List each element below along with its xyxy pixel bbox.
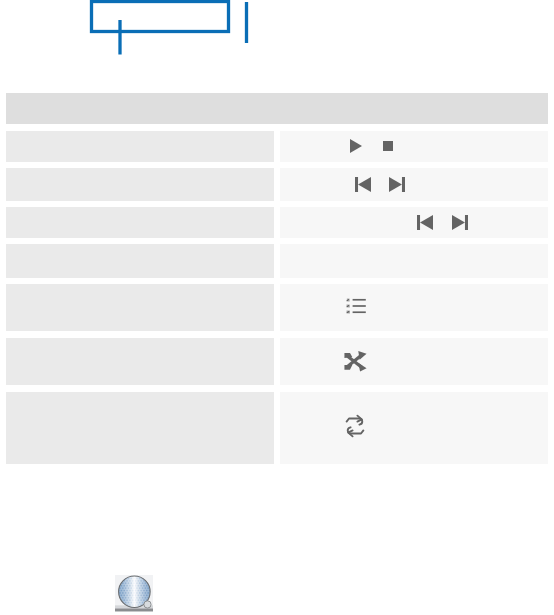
button[interactable]: Setting 2 value bbox=[280, 168, 548, 201]
button[interactable]: Repeat bbox=[345, 415, 365, 437]
button[interactable]: Playlist bbox=[346, 298, 366, 314]
button[interactable]: Play bbox=[350, 139, 362, 153]
button[interactable]: Setting 7 value bbox=[280, 392, 548, 464]
button[interactable]: Media disc bbox=[115, 575, 153, 613]
button[interactable]: Setting 1 value bbox=[280, 131, 548, 162]
button[interactable]: Previous track bbox=[355, 177, 371, 192]
button[interactable]: Setting 5 value bbox=[280, 284, 548, 331]
button[interactable]: Skip to next bbox=[452, 215, 468, 230]
button[interactable]: Setting 6 value bbox=[280, 338, 548, 385]
button[interactable]: Setting 3 value bbox=[280, 207, 548, 238]
button[interactable]: Skip to previous bbox=[417, 215, 433, 230]
button[interactable]: Shuffle bbox=[344, 350, 367, 372]
button[interactable]: Next track bbox=[389, 177, 405, 192]
